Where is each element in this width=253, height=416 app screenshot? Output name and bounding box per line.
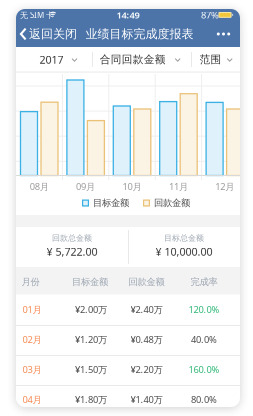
staticText: 80.0% [191,393,217,406]
button[interactable]: More [211,21,235,46]
staticText: 2017 [39,52,63,67]
staticText: 10月 [122,180,141,193]
staticText: 40.0% [191,333,217,346]
staticText: ¥1.50万 [75,363,107,376]
staticText: 合同回款金额 [100,53,166,66]
staticText: 09月 [76,180,95,193]
staticText: ¥1.20万 [75,333,107,346]
staticText: 02月 [22,333,41,346]
button[interactable]: 2017 [16,47,92,72]
staticText: 范围 [199,53,221,66]
staticText: ¥2.40万 [130,303,162,316]
staticText: ¥0.48万 [130,333,162,346]
staticText: 08月 [30,180,49,193]
staticText: ¥ 5,722.00 [46,245,97,259]
button[interactable]: 范围 [191,47,240,72]
staticText: 返回 [29,27,53,41]
staticText: ¥1.40万 [130,393,162,406]
staticText: 03月 [22,363,41,376]
staticText: 87% [201,9,219,21]
button[interactable]: 关闭 [53,21,77,46]
staticText: 04月 [22,393,41,406]
staticText: 目标金额 [72,276,108,288]
staticText: 160.0% [188,363,219,376]
staticText: 120.0% [188,303,219,316]
staticText: 14:49 [116,9,139,21]
staticText: 01月 [22,303,41,316]
button[interactable]: 合同回款金额 [92,47,191,72]
staticText: 无 SIM 卡 [20,10,54,20]
staticText: 业绩目标完成度报表 [85,27,193,41]
staticText: 目标金额 [93,197,129,209]
staticText: ¥2.20万 [130,363,162,376]
staticText: ¥ 10,000.00 [155,245,212,259]
staticText: 完成率 [190,276,217,288]
staticText: 关闭 [53,27,77,41]
staticText: ¥1.80万 [75,393,107,406]
staticText: 回款金额 [128,276,164,288]
staticText: 月份 [21,276,39,288]
staticText: 目标总金额 [164,233,204,243]
staticText: ¥2.00万 [75,303,107,316]
staticText: 回款金额 [154,197,190,209]
button[interactable]: 返回 [20,21,54,46]
staticText: 12月 [215,180,234,193]
staticText: 回款总金额 [52,233,92,243]
staticText: 11月 [169,180,188,193]
